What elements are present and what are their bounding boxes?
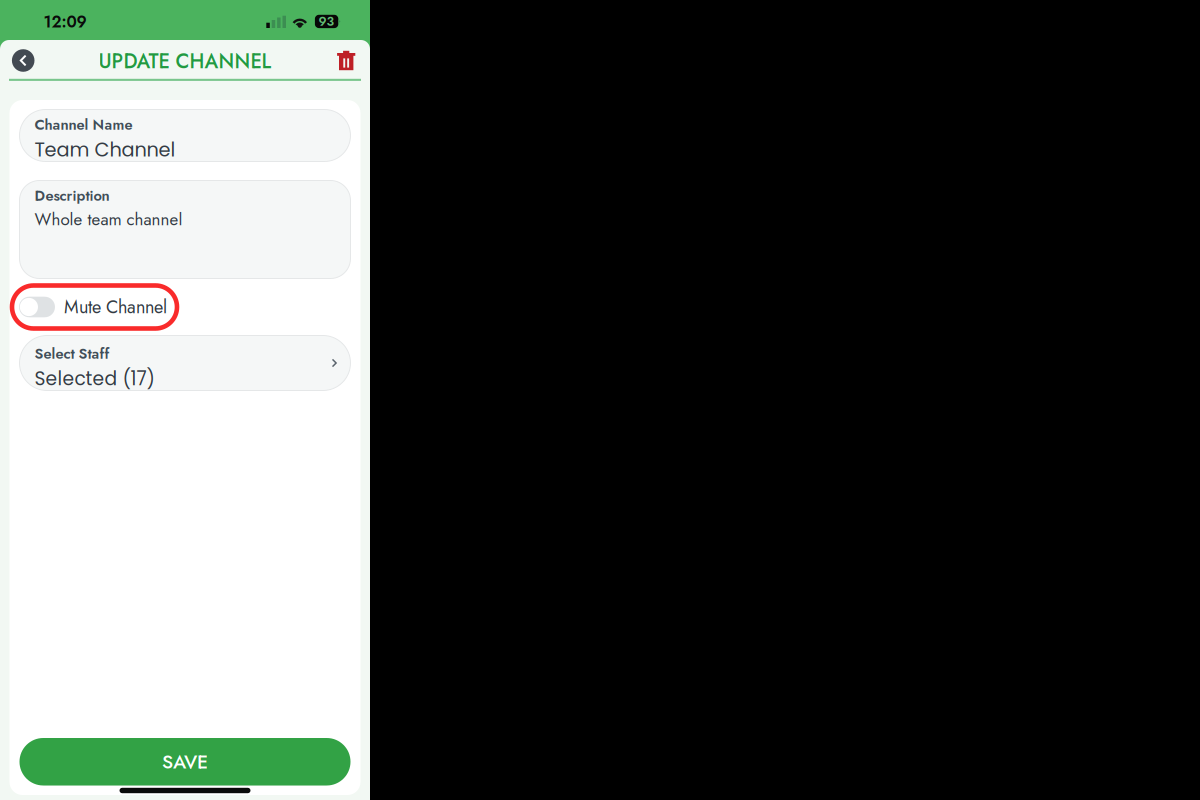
staticText: Description xyxy=(34,185,109,206)
button[interactable]: SAVE xyxy=(19,738,350,785)
staticText: 93 xyxy=(319,12,335,31)
staticText: Mute Channel xyxy=(64,294,167,320)
staticText: Team Channel xyxy=(34,136,175,163)
button[interactable]: Mute Channel xyxy=(9,283,360,330)
button[interactable]: Delete channel xyxy=(330,44,362,76)
staticText: Select Staff xyxy=(34,343,109,364)
button[interactable]: Select Staff xyxy=(19,335,350,390)
staticText: Whole team channel xyxy=(34,207,182,232)
staticText: Channel Name xyxy=(34,114,132,135)
staticText: SAVE xyxy=(162,748,208,776)
staticText: UPDATE CHANNEL xyxy=(98,47,271,76)
staticText: 12:09 xyxy=(43,10,86,33)
staticText: Selected (17) xyxy=(34,366,154,392)
button[interactable]: Back xyxy=(6,43,40,77)
